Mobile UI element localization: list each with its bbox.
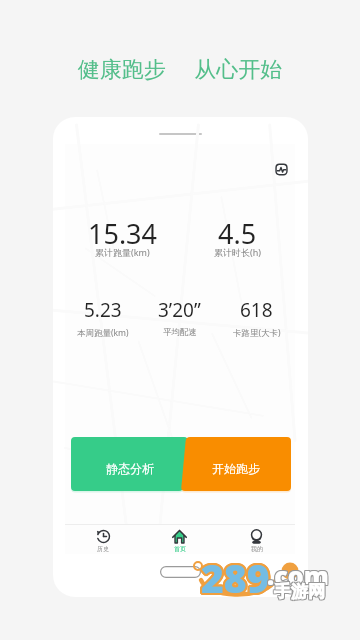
staticText: 289 [201,551,270,604]
staticText: 手游网 [273,580,324,601]
staticText: 手游网 [273,582,324,603]
staticText: 4.5 [218,215,257,252]
staticText: 手游网 [273,581,324,602]
staticText: 289 [202,552,271,605]
staticText: 289 [200,551,269,604]
button[interactable]: Health record [275,163,288,176]
staticText: 首页 [174,545,186,553]
staticText: .com [266,559,328,593]
staticText: 健康跑步 从心开始 [0,53,360,83]
staticText: 289 [199,550,268,603]
button[interactable]: 开始跑步 [181,437,291,491]
button[interactable]: 静态分析 [71,437,188,491]
staticText: 15.34 [88,215,158,252]
staticText: 手游网 [275,582,326,603]
staticText: 手游网 [274,582,325,603]
staticText: 本周跑量(km) [77,327,129,339]
staticText: 手游网 [275,580,326,601]
staticText: 289 [200,550,269,603]
staticText: 平均配速 [163,327,197,338]
button[interactable]: 我的 [218,525,295,554]
staticText: 历史 [97,545,109,553]
staticText: 手游网 [274,580,325,601]
staticText: 手游网 [274,581,325,602]
staticText: .com [267,558,329,592]
staticText: .com [268,559,330,593]
staticText: 卡路里(大卡) [233,327,281,339]
staticText: 289 [203,551,272,604]
staticText: 手游网 [274,581,325,602]
staticText: 289 [202,551,271,604]
staticText: 5.23 [84,297,122,323]
staticText: .com [266,557,328,591]
staticText: .com [268,558,330,592]
staticText: 289 [201,550,270,603]
staticText: 累计时长(h) [214,246,261,258]
staticText: .com [267,558,329,592]
button[interactable]: 首页 [141,525,218,554]
staticText: 289 [199,552,268,605]
staticText: 289 [203,552,272,605]
staticText: 我的 [251,545,263,553]
staticText: 静态分析 [106,461,154,476]
staticText: 289 [202,549,271,602]
staticText: 3’20” [158,297,201,323]
button[interactable]: 历史 [65,525,141,554]
staticText: 289 [202,550,271,603]
staticText: 289 [202,553,271,606]
staticText: 289 [203,550,272,603]
staticText: .com [267,557,329,591]
staticText: 手游网 [275,581,326,602]
staticText: 开始跑步 [212,461,260,476]
staticText: .com [267,559,329,593]
staticText: 289 [200,552,269,605]
staticText: 289 [201,549,270,602]
staticText: 289 [200,553,269,606]
staticText: 289 [201,552,270,605]
staticText: 289 [201,553,270,606]
staticText: 累计跑量(km) [95,246,150,258]
staticText: 289 [200,549,269,602]
staticText: .com [268,557,330,591]
staticText: 289 [201,551,270,604]
staticText: .com [266,558,328,592]
staticText: 289 [199,551,268,604]
staticText: 618 [240,297,273,323]
